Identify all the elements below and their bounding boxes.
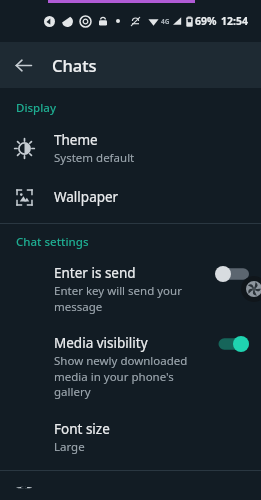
staticText: Display bbox=[16, 100, 56, 116]
button[interactable]: Screen recorder bbox=[241, 276, 261, 302]
button[interactable]: Chat backup bbox=[0, 475, 261, 500]
staticText: Enter is send bbox=[54, 264, 136, 282]
button[interactable]: Enter is send bbox=[0, 254, 261, 324]
button[interactable]: Font size bbox=[0, 409, 261, 466]
staticText: 12:54 bbox=[221, 14, 248, 28]
button[interactable]: On bbox=[215, 336, 249, 352]
staticText: Chat settings bbox=[16, 234, 89, 250]
button[interactable]: Wallpaper bbox=[0, 177, 261, 217]
staticText: System default bbox=[54, 150, 135, 166]
staticText: Show newly downloaded media in your phon… bbox=[54, 353, 207, 399]
staticText: Enter key will send your message bbox=[54, 283, 207, 314]
button[interactable]: Media visibility bbox=[0, 324, 261, 409]
button[interactable]: Back bbox=[0, 42, 46, 88]
staticText: 69% bbox=[195, 14, 217, 28]
staticText: Theme bbox=[54, 131, 98, 149]
staticText: Large bbox=[54, 439, 85, 455]
staticText: Font size bbox=[54, 420, 110, 438]
staticText: Chats bbox=[52, 54, 97, 76]
button[interactable]: Theme bbox=[0, 120, 261, 177]
staticText: Wallpaper bbox=[54, 188, 119, 206]
staticText: Media visibility bbox=[54, 334, 148, 352]
button[interactable]: Off bbox=[215, 266, 249, 282]
staticText: 4G bbox=[161, 17, 170, 26]
